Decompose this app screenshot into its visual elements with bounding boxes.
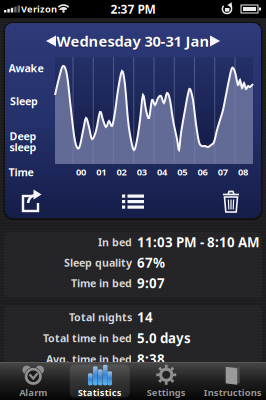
staticText: 67% <box>137 254 165 271</box>
button[interactable]: Instructions <box>200 363 266 400</box>
staticText: Total nights <box>69 310 132 324</box>
staticText: In bed <box>98 235 132 249</box>
staticText: 9:07 <box>137 274 165 292</box>
staticText: 14 <box>137 308 153 326</box>
button[interactable]: Next night <box>0 0 266 400</box>
button[interactable]: Statistics <box>67 363 133 400</box>
button[interactable]: Delete night <box>216 188 246 214</box>
button[interactable]: Previous night <box>0 0 266 400</box>
staticText: Instructions <box>204 386 262 399</box>
staticText: 02 <box>116 166 126 178</box>
staticText: Wednesday 30-31 Jan <box>56 31 209 51</box>
staticText: Wednesday 30-31 Jan <box>56 32 209 52</box>
staticText: Total time in bed <box>43 331 132 345</box>
button[interactable]: List of nights <box>118 188 148 214</box>
staticText: 5.0 days <box>137 329 191 347</box>
staticText: 04 <box>157 166 167 178</box>
staticText: 00 <box>76 166 86 178</box>
staticText: Deep <box>9 129 36 143</box>
button[interactable]: Share <box>16 188 46 214</box>
staticText: Sleep <box>10 94 38 108</box>
button[interactable]: Settings <box>133 363 199 400</box>
staticText: 8:38 <box>137 350 165 368</box>
staticText: Avg. time in bed <box>46 352 132 366</box>
staticText: Time <box>8 165 33 179</box>
staticText: 05 <box>177 166 187 178</box>
staticText: 06 <box>197 166 207 178</box>
staticText: 2:37 PM <box>110 1 155 17</box>
staticText: 11:03 PM - 8:10 AM <box>137 233 260 251</box>
staticText: Statistics <box>78 386 122 399</box>
button[interactable]: Alarm <box>0 363 66 400</box>
staticText: Sleep quality <box>64 255 132 270</box>
staticText: Verizon <box>21 3 57 15</box>
staticText: 08 <box>238 166 248 178</box>
staticText: Time in bed <box>71 276 132 290</box>
staticText: 03 <box>137 166 147 178</box>
staticText: 07 <box>218 166 228 178</box>
staticText: Awake <box>8 61 43 75</box>
staticText: Settings <box>147 386 186 399</box>
staticText: sleep <box>9 140 36 154</box>
staticText: Alarm <box>19 386 47 399</box>
staticText: 01 <box>96 166 106 178</box>
